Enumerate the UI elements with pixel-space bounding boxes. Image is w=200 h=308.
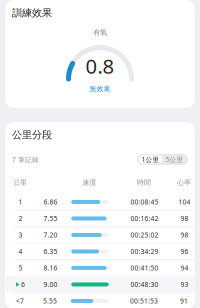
staticText: 00:08:45 — [130, 197, 158, 206]
staticText: 93 — [180, 280, 188, 289]
staticText: 104 — [178, 197, 190, 206]
staticText: 00:48:30 — [130, 280, 158, 289]
staticText: 速度 — [82, 178, 96, 187]
staticText: 98 — [180, 230, 188, 239]
staticText: 訓練效果 — [12, 7, 52, 19]
staticText: 8.16 — [43, 263, 57, 272]
staticText: 00:16:42 — [130, 214, 158, 223]
staticText: 時間 — [137, 178, 151, 187]
staticText: 91 — [180, 296, 188, 305]
staticText: 無效果 — [89, 85, 110, 93]
staticText: 00:41:50 — [130, 263, 158, 272]
staticText: 公里 — [13, 178, 27, 187]
button[interactable]: 5公里 — [162, 155, 186, 163]
staticText: 6.86 — [43, 197, 57, 206]
staticText: 5.55 — [43, 296, 57, 305]
staticText: 1 — [18, 197, 22, 206]
staticText: 96 — [180, 247, 188, 256]
staticText: 6 — [21, 280, 25, 289]
staticText: 2 — [18, 214, 22, 223]
staticText: 0.8 — [85, 52, 114, 80]
staticText: 6.35 — [43, 247, 57, 256]
staticText: 7.20 — [43, 230, 57, 239]
staticText: 4 — [18, 247, 22, 256]
staticText: 有氧 — [93, 28, 107, 37]
staticText: 5 — [18, 263, 22, 272]
staticText: 心率 — [177, 178, 191, 187]
staticText: 3 — [18, 230, 22, 239]
staticText: <7 — [16, 296, 24, 305]
staticText: 00:25:02 — [130, 230, 158, 239]
staticText: 00:51:53 — [130, 296, 158, 305]
staticText: 7 筆記錄 — [12, 155, 39, 164]
staticText: 5公里 — [165, 155, 183, 164]
staticText: 7.55 — [43, 214, 57, 223]
staticText: 98 — [180, 214, 188, 223]
button[interactable]: 1公里 — [138, 155, 162, 163]
staticText: 公里分段 — [12, 129, 52, 141]
staticText: 9.00 — [43, 280, 57, 289]
staticText: 94 — [180, 263, 188, 272]
staticText: 00:34:29 — [130, 247, 158, 256]
staticText: 1公里 — [141, 155, 159, 164]
